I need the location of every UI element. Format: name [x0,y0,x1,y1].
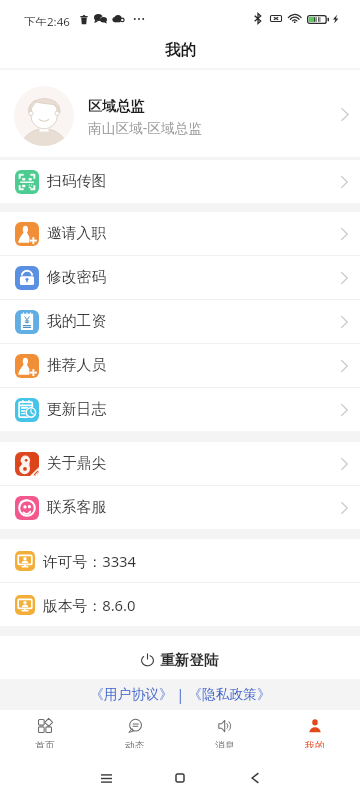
button[interactable]: 更新日志 [0,388,360,431]
button[interactable]: 联系客服 [0,486,360,529]
button[interactable]: 扫码传图 [0,160,360,203]
staticText: 版本号：8.6.0 [43,595,136,615]
staticText: 消息 [215,740,235,752]
staticText: 许可号：3334 [43,551,137,571]
button[interactable]: 《隐私政策》 [188,686,271,703]
staticText: 我的 [305,740,325,752]
staticText: 更新日志 [47,400,107,419]
button[interactable]: Recents [69,748,143,800]
staticText: 区域总监 [88,98,144,116]
button[interactable]: Back [218,748,292,800]
button[interactable]: 消息 [180,710,270,748]
staticText: 我的 [165,40,196,60]
staticText: 首页 [35,740,55,752]
staticText: 重新登陆 [160,651,219,669]
button[interactable]: 我的工资 [0,300,360,343]
staticText: 修改密码 [47,268,107,287]
other: Profile detail [341,108,349,121]
button[interactable]: 区域总监 [0,70,360,157]
button[interactable]: 推荐人员 [0,344,360,387]
staticText: 下午2:46 [24,14,70,30]
button[interactable]: Home [143,748,217,800]
staticText: | [173,685,188,704]
staticText: 推荐人员 [47,356,107,375]
button[interactable]: 《用户协议》 [90,686,173,703]
staticText: 动态 [125,740,145,752]
button[interactable]: 我的 [270,710,360,748]
staticText: 联系客服 [47,498,107,517]
staticText: 我的工资 [47,312,107,331]
button[interactable]: 邀请入职 [0,212,360,255]
button[interactable]: 关于鼎尖 [0,442,360,485]
staticText: 扫码传图 [47,172,107,191]
button[interactable]: 首页 [0,710,90,748]
staticText: 关于鼎尖 [47,454,107,473]
staticText: 邀请入职 [47,224,107,243]
staticText: 南山区域-区域总监 [88,118,202,137]
button[interactable]: 重新登陆 [0,636,360,679]
button[interactable]: 修改密码 [0,256,360,299]
button[interactable]: 动态 [90,710,180,748]
